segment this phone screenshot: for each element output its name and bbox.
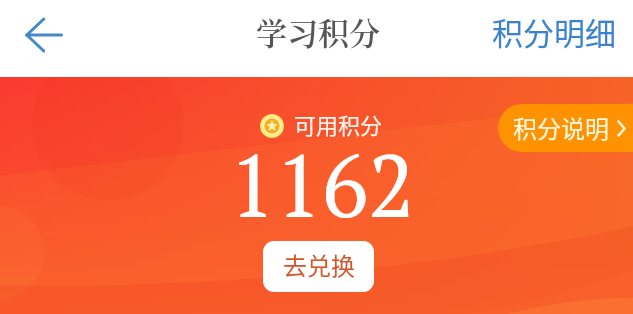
staticText: 1162 <box>229 127 415 242</box>
button[interactable]: 去兑换 <box>263 241 374 292</box>
button[interactable]: 积分说明 <box>498 104 633 152</box>
staticText: 去兑换 <box>283 247 355 282</box>
staticText: 可用积分 <box>294 108 383 140</box>
button[interactable]: 积分明细 <box>474 0 633 70</box>
staticText: 积分说明 <box>513 110 609 145</box>
staticText: 学习积分 <box>256 9 380 54</box>
button[interactable]: Back <box>8 0 80 69</box>
staticText: 积分明细 <box>492 9 616 54</box>
